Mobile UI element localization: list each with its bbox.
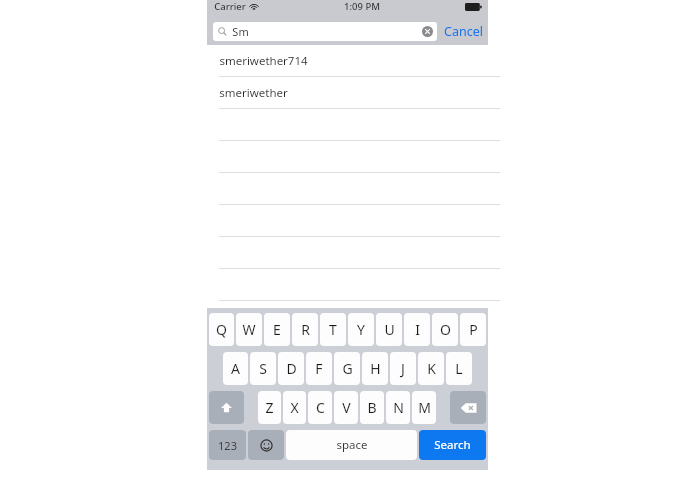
- button[interactable]: B: [360, 391, 384, 424]
- button[interactable]: E: [264, 313, 290, 346]
- button[interactable]: Z: [258, 391, 281, 424]
- staticText: K: [427, 359, 436, 378]
- button[interactable]: Clear text: [422, 26, 433, 37]
- button[interactable]: R: [292, 313, 318, 346]
- staticText: C: [316, 398, 325, 417]
- staticText: E: [273, 320, 281, 339]
- staticText: 1:09 PM: [344, 0, 380, 13]
- button[interactable]: G: [334, 352, 360, 385]
- button[interactable]: Sm: [213, 22, 437, 41]
- staticText: N: [393, 398, 404, 417]
- staticText: D: [286, 359, 297, 378]
- button[interactable]: P: [460, 313, 486, 346]
- button[interactable]: X: [283, 391, 306, 424]
- button[interactable]: Cancel: [444, 23, 483, 40]
- button[interactable]: D: [278, 352, 304, 385]
- button[interactable]: Y: [348, 313, 374, 346]
- staticText: T: [329, 320, 337, 339]
- button[interactable]: smeriwether: [207, 77, 488, 109]
- staticText: V: [342, 398, 351, 417]
- staticText: Sm: [232, 24, 249, 39]
- button[interactable]: S: [250, 352, 276, 385]
- staticText: Search: [434, 437, 471, 453]
- staticText: space: [336, 437, 368, 453]
- staticText: Carrier: [214, 0, 246, 13]
- staticText: U: [384, 320, 395, 339]
- button[interactable]: smeriwether714: [207, 45, 488, 77]
- staticText: X: [290, 398, 299, 417]
- button[interactable]: W: [236, 313, 262, 346]
- button[interactable]: A: [223, 352, 248, 385]
- button[interactable]: H: [362, 352, 388, 385]
- staticText: W: [242, 320, 256, 339]
- staticText: P: [469, 320, 478, 339]
- button[interactable]: C: [308, 391, 332, 424]
- button[interactable]: Shift: [209, 391, 244, 424]
- staticText: smeriwether714: [219, 53, 308, 69]
- staticText: Q: [216, 320, 227, 339]
- button[interactable]: space: [286, 430, 417, 460]
- staticText: Z: [265, 398, 274, 417]
- button[interactable]: I: [404, 313, 430, 346]
- staticText: G: [342, 359, 353, 378]
- button[interactable]: O: [432, 313, 458, 346]
- button[interactable]: V: [334, 391, 358, 424]
- staticText: F: [315, 359, 323, 378]
- button[interactable]: Q: [209, 313, 234, 346]
- button[interactable]: F: [306, 352, 332, 385]
- button[interactable]: N: [386, 391, 410, 424]
- staticText: smeriwether: [219, 85, 288, 101]
- button[interactable]: T: [320, 313, 346, 346]
- staticText: H: [370, 359, 381, 378]
- staticText: L: [455, 359, 463, 378]
- staticText: 123: [218, 438, 237, 453]
- button[interactable]: U: [376, 313, 402, 346]
- button[interactable]: J: [390, 352, 416, 385]
- button[interactable]: Numbers and symbols: [209, 430, 246, 460]
- staticText: J: [401, 359, 405, 378]
- staticText: A: [231, 359, 240, 378]
- button[interactable]: L: [446, 352, 472, 385]
- staticText: Y: [357, 320, 365, 339]
- staticText: Cancel: [444, 23, 483, 40]
- button[interactable]: Emoji: [248, 430, 284, 460]
- staticText: R: [301, 320, 310, 339]
- button[interactable]: K: [418, 352, 444, 385]
- staticText: S: [259, 359, 267, 378]
- button[interactable]: M: [412, 391, 436, 424]
- staticText: B: [367, 398, 377, 417]
- button[interactable]: Search: [419, 430, 486, 460]
- staticText: O: [440, 320, 451, 339]
- staticText: I: [415, 320, 420, 339]
- button[interactable]: Backspace: [450, 391, 486, 424]
- staticText: M: [418, 398, 431, 417]
